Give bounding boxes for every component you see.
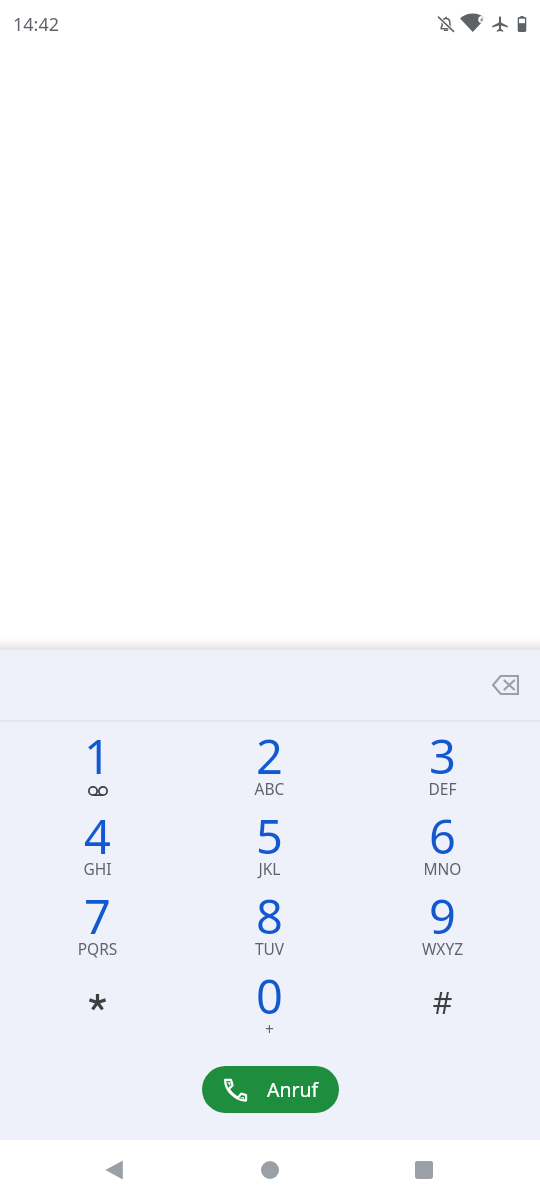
button[interactable]: Pound bbox=[356, 966, 529, 1042]
staticText: 9 bbox=[356, 884, 529, 948]
staticText: 1 bbox=[11, 724, 184, 788]
staticText: 8 bbox=[183, 884, 356, 948]
staticText: JKL bbox=[183, 858, 356, 879]
staticText: 0 bbox=[183, 964, 356, 1028]
button[interactable]: 3 bbox=[356, 726, 529, 802]
staticText: 3 bbox=[356, 724, 529, 788]
button[interactable]: 1 bbox=[11, 726, 184, 802]
button[interactable]: Back bbox=[86, 1142, 142, 1198]
button[interactable]: 5 bbox=[183, 806, 356, 882]
staticText: ABC bbox=[183, 778, 356, 799]
staticText: TUV bbox=[183, 938, 356, 959]
staticText: PQRS bbox=[11, 938, 184, 959]
staticText: WXYZ bbox=[356, 938, 529, 959]
staticText: 6 bbox=[356, 804, 529, 868]
staticText: + bbox=[183, 1018, 356, 1039]
button[interactable]: 9 bbox=[356, 886, 529, 962]
staticText: 4 bbox=[11, 804, 184, 868]
staticText: 2 bbox=[183, 724, 356, 788]
button[interactable]: 4 bbox=[11, 806, 184, 882]
button[interactable]: 7 bbox=[11, 886, 184, 962]
staticText: Anruf bbox=[267, 1076, 319, 1103]
staticText: 5 bbox=[183, 804, 356, 868]
staticText: # bbox=[356, 981, 529, 1023]
button[interactable]: 0 bbox=[183, 966, 356, 1042]
button[interactable]: Backspace bbox=[481, 661, 529, 709]
staticText: MNO bbox=[356, 858, 529, 879]
button[interactable]: 2 bbox=[183, 726, 356, 802]
button[interactable]: 8 bbox=[183, 886, 356, 962]
button[interactable]: Recent apps bbox=[396, 1142, 452, 1198]
staticText: 7 bbox=[11, 884, 184, 948]
button[interactable]: Home bbox=[242, 1142, 298, 1198]
staticText: 14:42 bbox=[13, 12, 60, 37]
button[interactable]: Anruf bbox=[202, 1066, 339, 1113]
staticText: GHI bbox=[11, 858, 184, 879]
button[interactable]: 6 bbox=[356, 806, 529, 882]
staticText: DEF bbox=[356, 778, 529, 799]
button[interactable]: Star bbox=[11, 966, 184, 1042]
